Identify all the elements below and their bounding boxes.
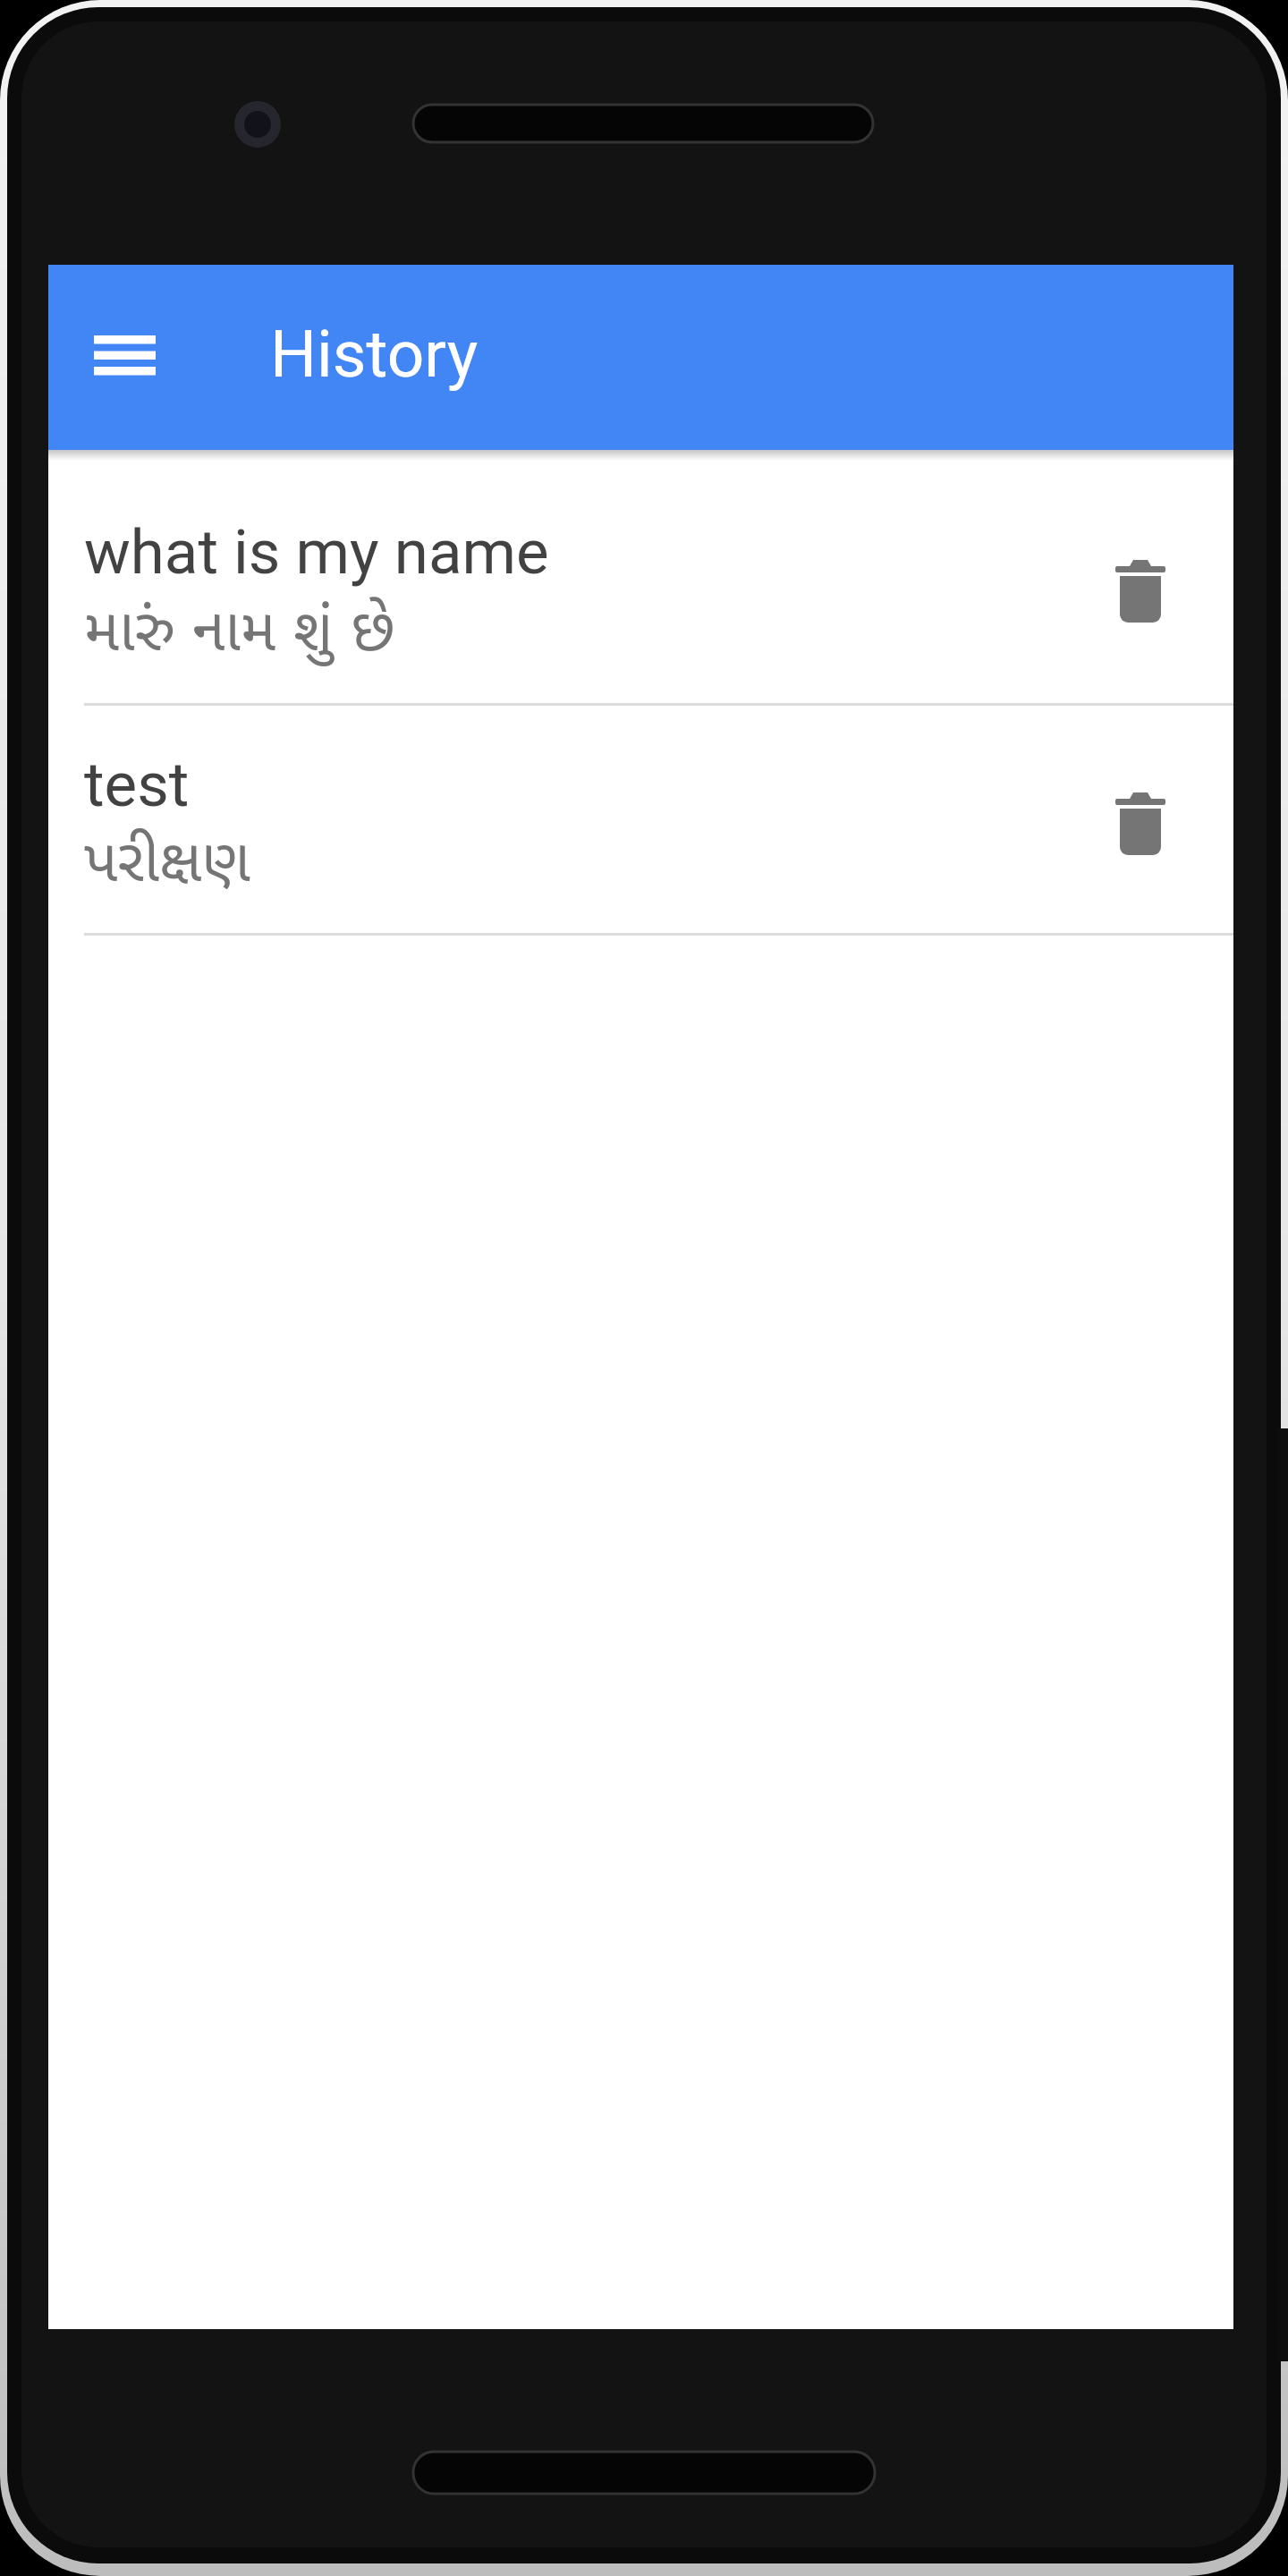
button[interactable]	[1115, 560, 1165, 623]
button[interactable]	[48, 461, 1233, 703]
button[interactable]	[94, 335, 156, 376]
button[interactable]	[1115, 792, 1165, 855]
staticText: મારું નામ શું છે	[84, 587, 395, 667]
button[interactable]	[48, 706, 1233, 933]
staticText: પરીક્ષણ	[84, 818, 250, 898]
staticText: test	[84, 749, 190, 821]
staticText: History	[270, 316, 479, 393]
staticText: what is my name	[84, 516, 549, 589]
